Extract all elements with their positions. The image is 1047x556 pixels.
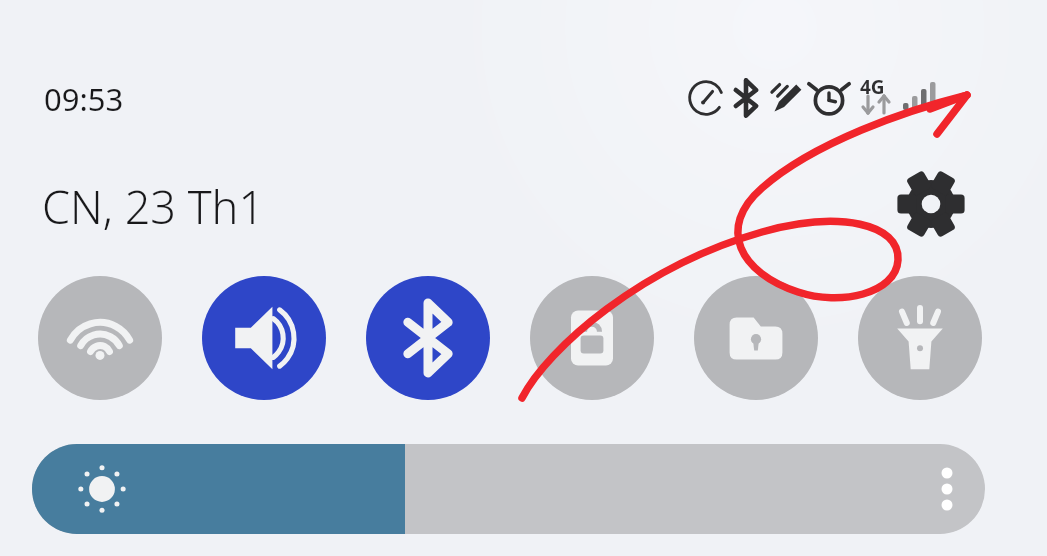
button[interactable]: Brightness [32,444,985,534]
button[interactable]: Settings [899,172,963,236]
button[interactable]: Wi-Fi [38,276,162,400]
button[interactable]: Flashlight [858,276,982,400]
button[interactable]: Auto rotate [530,276,654,400]
button[interactable]: Secure Folder [694,276,818,400]
button[interactable]: Bluetooth [366,276,490,400]
button[interactable]: Sound [202,276,326,400]
